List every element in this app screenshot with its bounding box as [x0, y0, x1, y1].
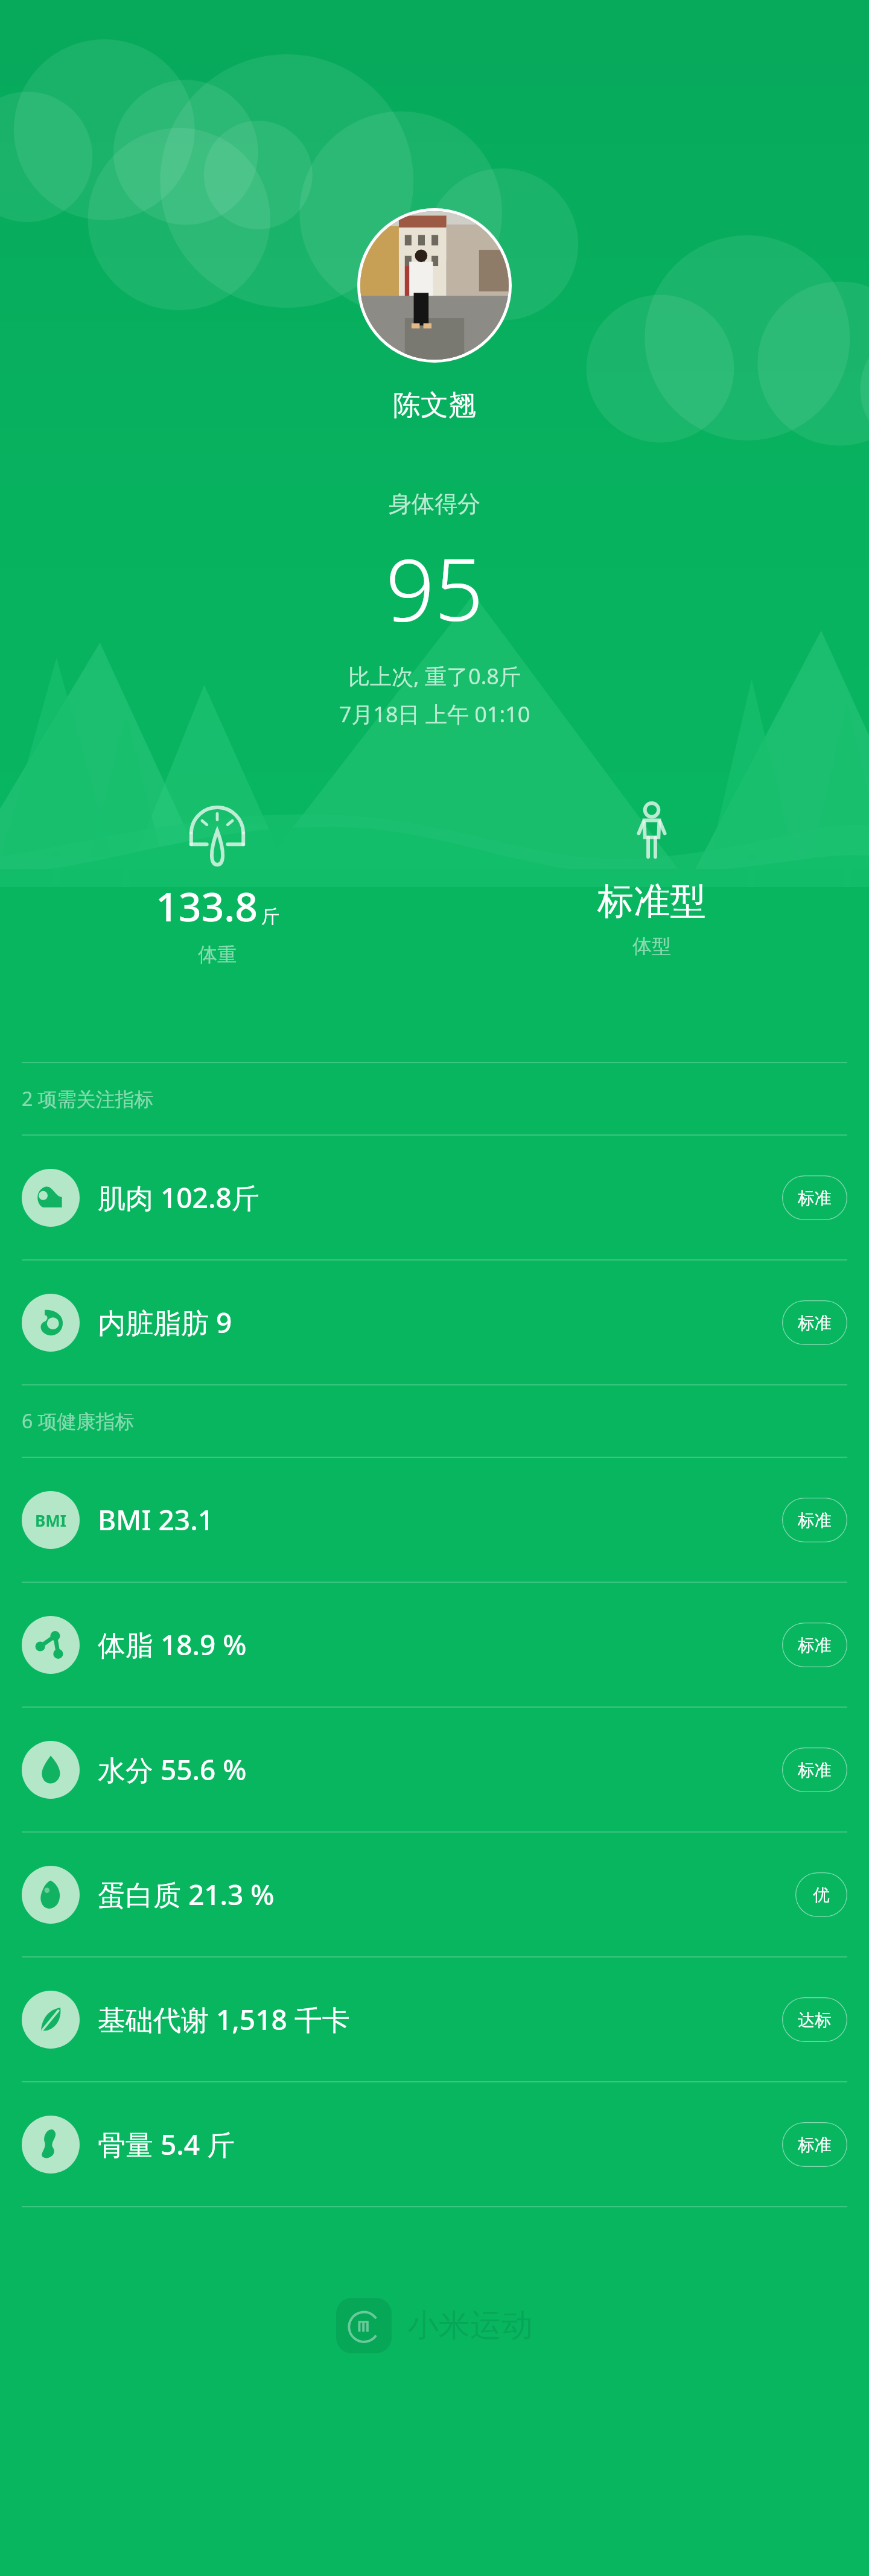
staticText: 达标	[798, 2009, 832, 2031]
staticText: 体脂 18.9 %	[98, 1626, 782, 1664]
button[interactable]: 内脏脂肪 9	[0, 1261, 869, 1384]
staticText: 2 项需关注指标	[22, 1086, 154, 1112]
button[interactable]: 基础代谢 1,518 千卡	[0, 1957, 869, 2081]
staticText: 95	[0, 529, 869, 646]
button[interactable]: 水分 55.6 %	[0, 1708, 869, 1831]
staticText: 体型	[632, 934, 671, 958]
staticText: 身体得分	[0, 489, 869, 518]
staticText: 基础代谢 1,518 千卡	[98, 2000, 782, 2038]
staticText: 体重	[198, 943, 237, 967]
staticText: 标准	[798, 1188, 832, 1209]
button[interactable]: Body type	[434, 794, 869, 963]
staticText: BMI 23.1	[98, 1501, 782, 1539]
staticText: 骨量 5.4 斤	[98, 2125, 782, 2163]
button[interactable]: 肌肉 102.8斤	[0, 1136, 869, 1259]
button[interactable]: 骨量 5.4 斤	[0, 2082, 869, 2206]
staticText: 标准	[798, 1510, 832, 1531]
staticText: 陈文翘	[0, 388, 869, 423]
staticText: 7月18日 上午 01:10	[0, 699, 869, 729]
button[interactable]: 蛋白质 21.3 %	[0, 1833, 869, 1956]
staticText: 6 项健康指标	[22, 1408, 135, 1434]
button[interactable]: Weight	[0, 794, 434, 972]
staticText: 标准	[798, 1760, 832, 1781]
staticText: 蛋白质 21.3 %	[98, 1875, 795, 1913]
staticText: 斤	[261, 905, 279, 928]
staticText: 133.8	[156, 879, 258, 933]
staticText: 标准	[798, 1635, 832, 1656]
staticText: 小米运动	[407, 2306, 533, 2345]
staticText: 内脏脂肪 9	[98, 1303, 782, 1341]
staticText: 水分 55.6 %	[98, 1751, 782, 1789]
staticText: 优	[813, 1884, 830, 1906]
staticText: 标准型	[597, 879, 706, 924]
staticText: 比上次, 重了0.8斤	[0, 661, 869, 691]
staticText: 标准	[798, 2134, 832, 2155]
button[interactable]: Profile photo	[360, 211, 509, 360]
staticText: 肌肉 102.8斤	[98, 1178, 782, 1216]
button[interactable]: BMI	[0, 1458, 869, 1582]
staticText: BMI	[35, 1510, 66, 1531]
button[interactable]: 体脂 18.9 %	[0, 1583, 869, 1706]
staticText: 标准	[798, 1312, 832, 1334]
